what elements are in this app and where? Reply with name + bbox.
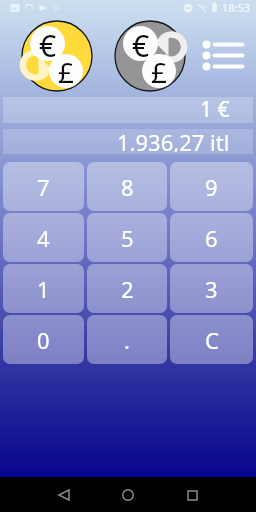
button[interactable]: Home: [112, 479, 144, 511]
staticText: 18:53: [222, 0, 251, 15]
staticText: 6: [205, 223, 218, 253]
staticText: £: [151, 54, 168, 87]
staticText: 8: [121, 172, 134, 202]
staticText: £: [58, 54, 75, 87]
button[interactable]: 8: [87, 162, 167, 211]
button[interactable]: 9: [170, 162, 253, 211]
staticText: 1.936,27 itl: [117, 127, 230, 152]
staticText: 4: [37, 223, 50, 253]
staticText: €: [132, 26, 150, 60]
staticText: 7: [37, 172, 50, 202]
button[interactable]: Back: [48, 479, 80, 511]
staticText: .: [124, 325, 130, 355]
staticText: 2: [121, 274, 134, 304]
button[interactable]: Convert euro to pound: [17, 16, 97, 96]
button[interactable]: 4: [3, 213, 84, 262]
staticText: 1 €: [200, 95, 230, 121]
staticText: 0: [37, 325, 50, 355]
button[interactable]: 0: [3, 315, 84, 364]
button[interactable]: Convert pound to euro: [110, 16, 190, 96]
staticText: 5: [121, 223, 134, 253]
button[interactable]: 7: [3, 162, 84, 211]
button[interactable]: 1: [3, 264, 84, 313]
button[interactable]: .: [87, 315, 167, 364]
button[interactable]: C: [170, 315, 253, 364]
button[interactable]: 5: [87, 213, 167, 262]
staticText: C: [205, 325, 219, 355]
button[interactable]: 3: [170, 264, 253, 313]
button[interactable]: 6: [170, 213, 253, 262]
staticText: 3: [205, 274, 218, 304]
staticText: 1: [37, 274, 50, 304]
staticText: €: [39, 26, 57, 60]
staticText: 9: [205, 172, 218, 202]
button[interactable]: 2: [87, 264, 167, 313]
button[interactable]: Recent apps: [176, 479, 208, 511]
button[interactable]: Currency list: [194, 29, 254, 83]
